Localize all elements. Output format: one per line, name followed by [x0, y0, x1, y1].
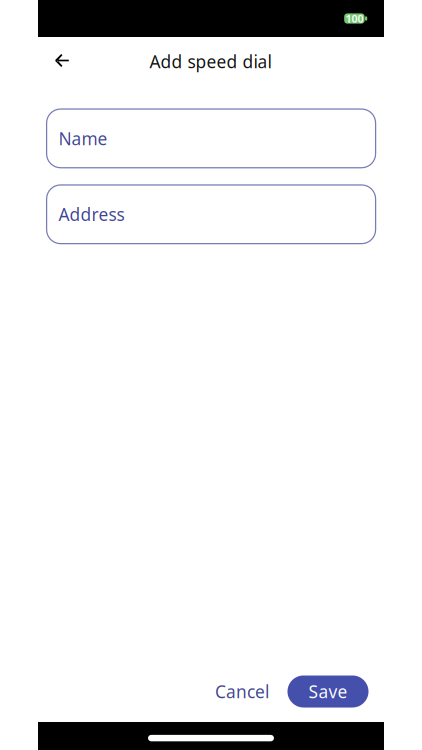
- staticText: Cancel: [215, 680, 269, 703]
- staticText: Save: [308, 680, 347, 703]
- button[interactable]: Address: [47, 185, 376, 244]
- staticText: Name: [59, 127, 108, 150]
- button[interactable]: Back: [41, 39, 83, 81]
- staticText: 100: [345, 11, 363, 26]
- staticText: Address: [59, 203, 125, 226]
- button[interactable]: Cancel: [205, 671, 279, 712]
- button[interactable]: Save: [287, 675, 368, 707]
- button[interactable]: Name: [47, 109, 376, 168]
- staticText: Add speed dial: [149, 50, 271, 73]
